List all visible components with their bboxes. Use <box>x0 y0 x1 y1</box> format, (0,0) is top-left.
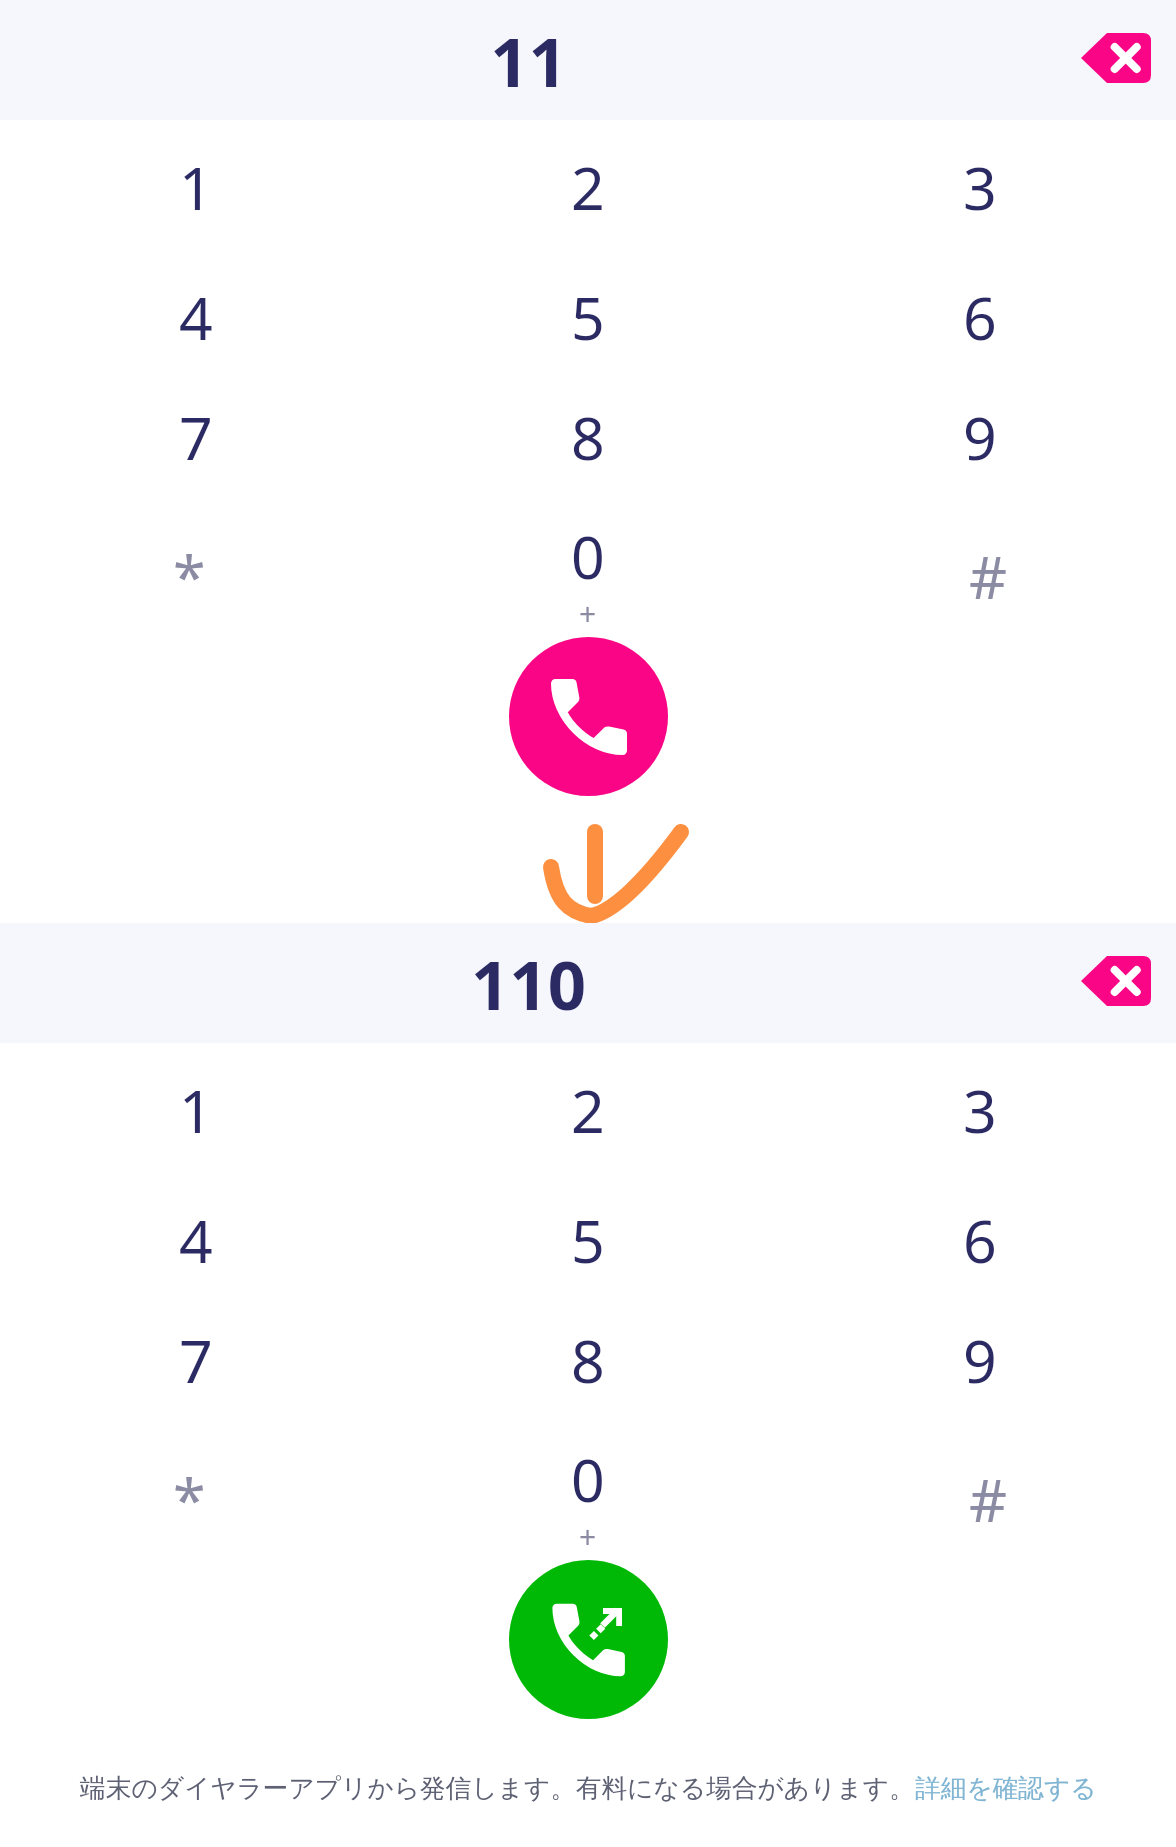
staticText: 6 <box>963 277 997 357</box>
staticText: 1 <box>179 147 213 227</box>
button[interactable]: # <box>784 514 1176 637</box>
staticText: 2 <box>571 1070 605 1150</box>
button[interactable]: 4 <box>0 1191 392 1314</box>
button[interactable]: * <box>0 514 392 637</box>
staticText: 2 <box>571 147 605 227</box>
staticText: 11 <box>490 15 567 106</box>
button[interactable]: Call <box>509 637 668 796</box>
button[interactable]: 2 <box>392 145 784 268</box>
button[interactable]: 7 <box>0 1314 392 1437</box>
staticText: 6 <box>963 1200 997 1280</box>
button[interactable]: 8 <box>392 1314 784 1437</box>
button[interactable]: 1 <box>0 1068 392 1191</box>
button[interactable]: 4 <box>0 268 392 391</box>
staticText: 4 <box>179 277 213 357</box>
staticText: + <box>579 593 597 634</box>
button[interactable]: 3 <box>784 1068 1176 1191</box>
button[interactable]: 5 <box>392 1191 784 1314</box>
staticText: 0 <box>571 516 605 596</box>
button[interactable]: 7 <box>0 391 392 514</box>
button[interactable]: 0 <box>392 1437 784 1560</box>
button[interactable]: 6 <box>784 1191 1176 1314</box>
button[interactable]: * <box>0 1437 392 1560</box>
staticText: 4 <box>179 1200 213 1280</box>
button[interactable]: 8 <box>392 391 784 514</box>
staticText: + <box>579 1516 597 1557</box>
button[interactable]: 3 <box>784 145 1176 268</box>
button[interactable]: 9 <box>784 391 1176 514</box>
staticText: 0 <box>571 1439 605 1519</box>
button[interactable]: Backspace <box>1056 0 1176 120</box>
button[interactable]: 5 <box>392 268 784 391</box>
staticText: * <box>173 1459 206 1539</box>
staticText: 7 <box>179 397 213 477</box>
staticText: 110 <box>471 938 586 1029</box>
button[interactable]: # <box>784 1437 1176 1560</box>
button[interactable]: 詳細を確認する <box>915 1772 1097 1804</box>
staticText: 8 <box>571 397 605 477</box>
button[interactable]: Backspace <box>1056 923 1176 1043</box>
staticText: 5 <box>571 1200 605 1280</box>
staticText: # <box>969 536 1008 616</box>
button[interactable]: 1 <box>0 145 392 268</box>
staticText: 端末のダイヤラーアプリから発信します。有料になる場合があります。 <box>80 1772 915 1804</box>
staticText: 7 <box>179 1320 213 1400</box>
staticText: # <box>969 1459 1008 1539</box>
staticText: 詳細を確認する <box>915 1772 1097 1804</box>
staticText: 9 <box>963 1320 997 1400</box>
staticText: * <box>173 536 206 616</box>
staticText: 1 <box>179 1070 213 1150</box>
staticText: 8 <box>571 1320 605 1400</box>
button[interactable]: Make call <box>509 1560 668 1719</box>
button[interactable]: 9 <box>784 1314 1176 1437</box>
staticText: 3 <box>963 147 997 227</box>
staticText: 9 <box>963 397 997 477</box>
staticText: 5 <box>571 277 605 357</box>
button[interactable]: 2 <box>392 1068 784 1191</box>
staticText: 3 <box>963 1070 997 1150</box>
button[interactable]: 0 <box>392 514 784 637</box>
button[interactable]: 6 <box>784 268 1176 391</box>
